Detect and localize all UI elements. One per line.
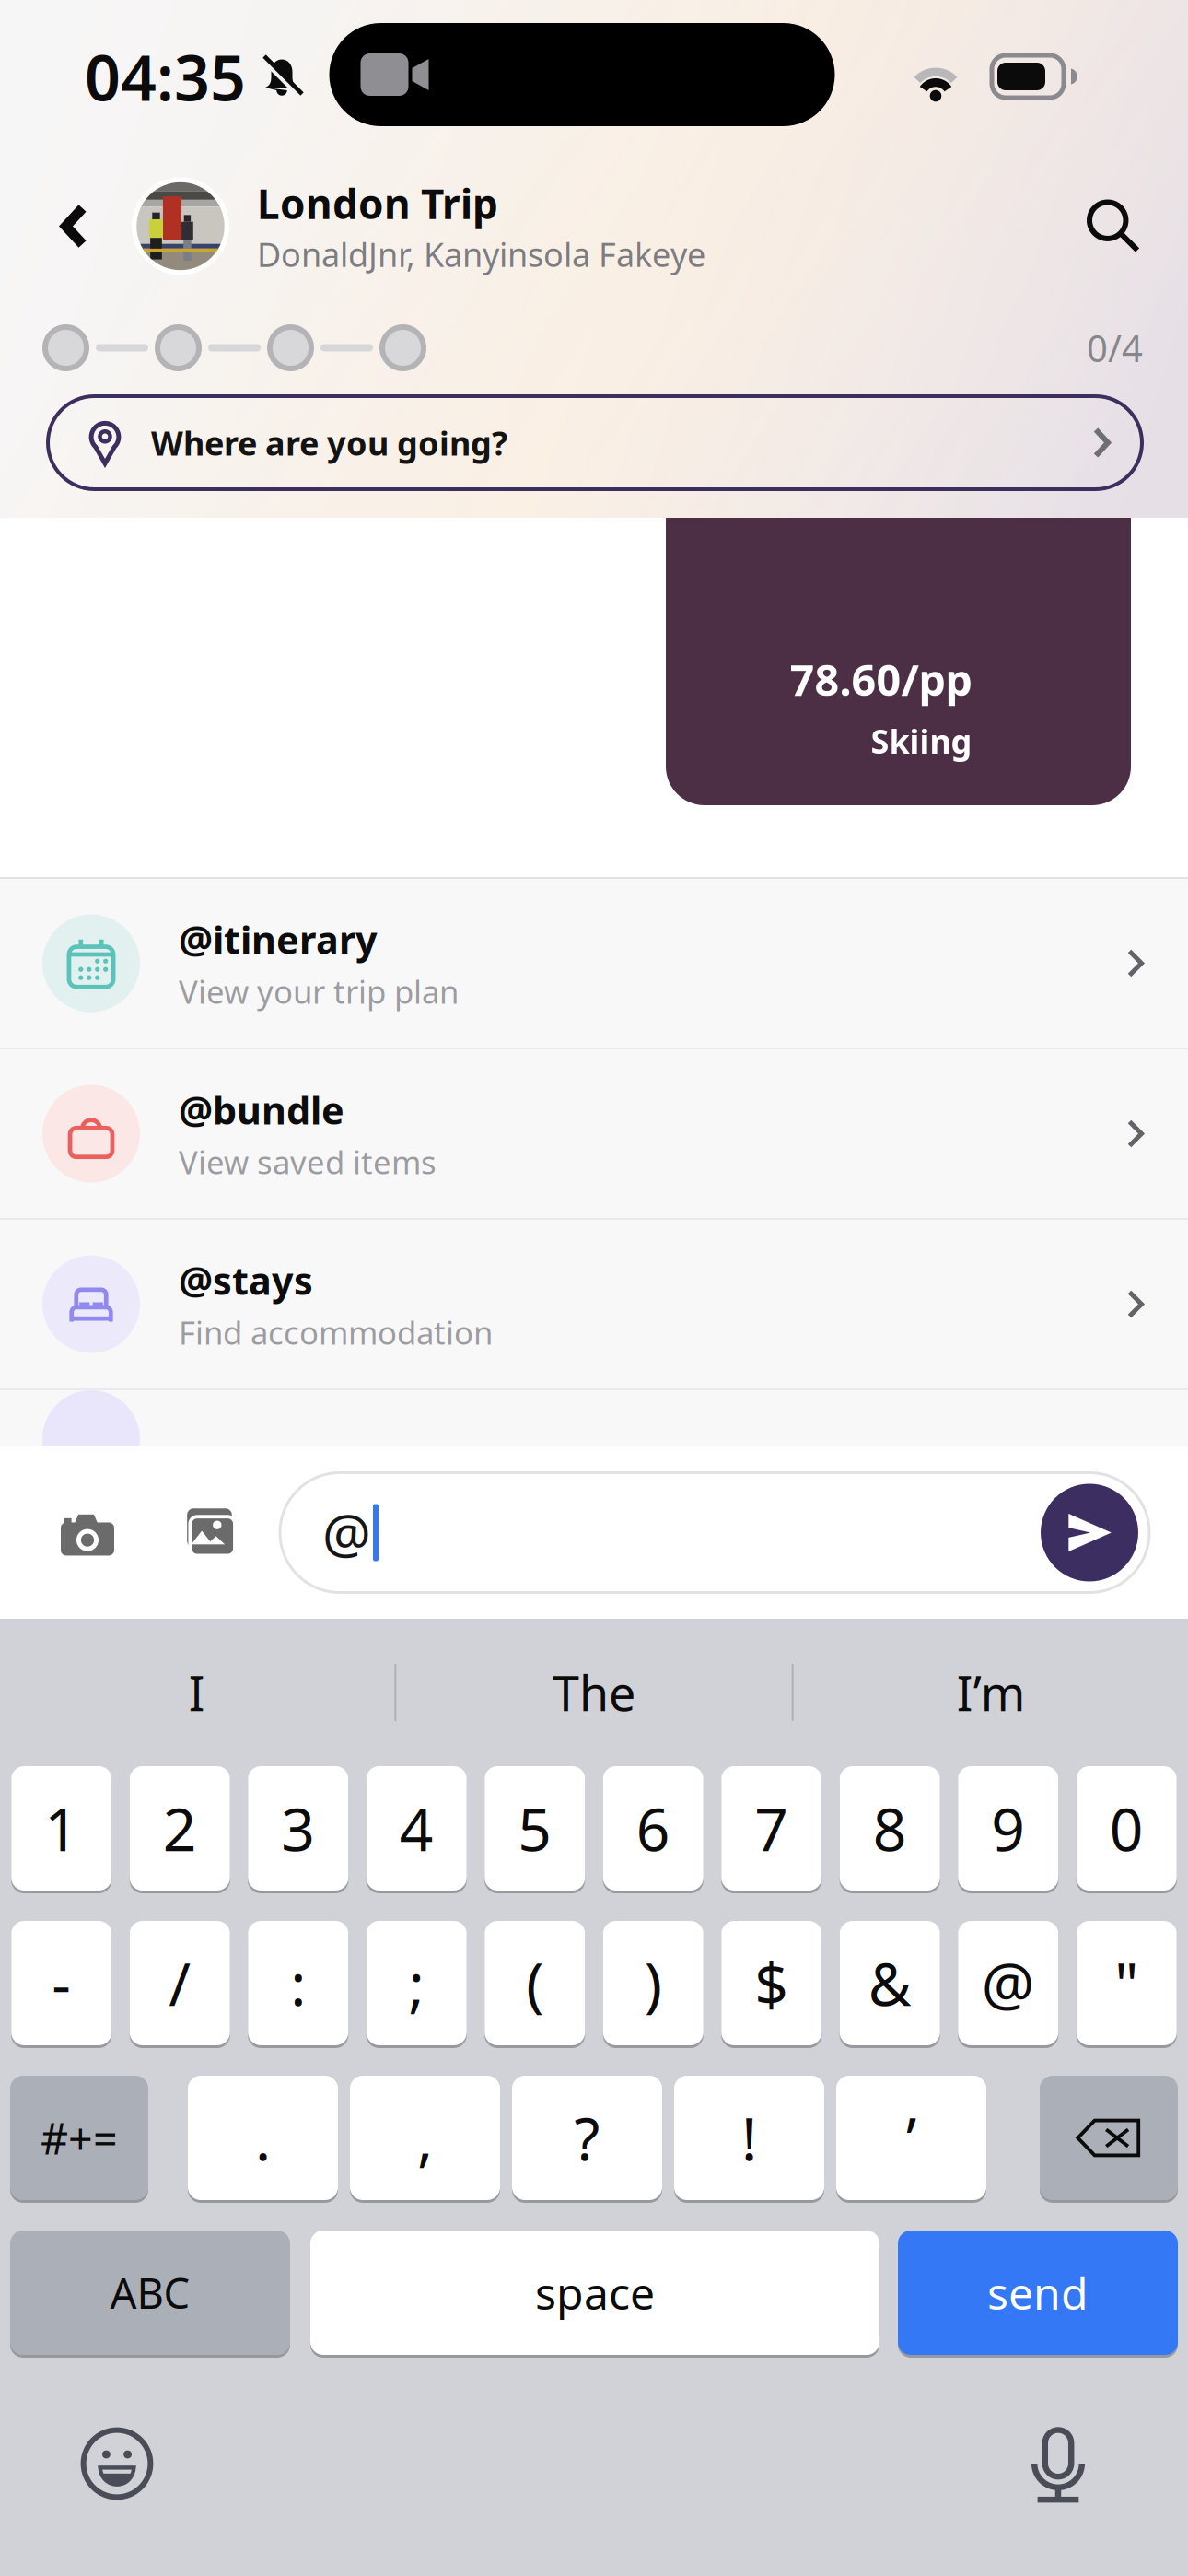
button[interactable]: ’ xyxy=(836,2076,986,2200)
staticText: @itinerary xyxy=(179,914,378,965)
staticText: #+= xyxy=(41,2109,118,2166)
staticText: space xyxy=(535,2263,655,2322)
button[interactable]: ! xyxy=(674,2076,824,2200)
button[interactable]: @bundle xyxy=(0,1049,1188,1218)
staticText: 0/4 xyxy=(1087,323,1143,372)
staticText: The xyxy=(553,1661,635,1724)
staticText: View saved items xyxy=(179,1140,437,1183)
button[interactable]: ABC xyxy=(10,2231,290,2355)
staticText: View your trip plan xyxy=(179,970,459,1012)
button[interactable]: 9 xyxy=(958,1766,1058,1891)
button[interactable]: Dictation xyxy=(1001,2406,1115,2521)
staticText: / xyxy=(169,1944,191,2022)
button[interactable]: : xyxy=(248,1921,348,2045)
button[interactable]: Photo library xyxy=(160,1482,250,1583)
button[interactable]: 6 xyxy=(603,1766,703,1891)
staticText: Find accommodation xyxy=(179,1311,493,1353)
staticText: ( xyxy=(526,1944,544,2022)
staticText: 4 xyxy=(399,1789,434,1868)
button[interactable]: ( xyxy=(485,1921,585,2045)
button[interactable]: @stays xyxy=(0,1220,1188,1388)
staticText: , xyxy=(417,2099,433,2177)
button[interactable]: 7 xyxy=(721,1766,822,1891)
staticText: send xyxy=(987,2263,1089,2322)
staticText: I’m xyxy=(957,1661,1026,1724)
staticText: Skiing xyxy=(871,719,972,763)
staticText: 04:35 xyxy=(85,35,246,118)
button[interactable]: Delete xyxy=(1040,2076,1178,2200)
staticText: 0 xyxy=(1110,1789,1144,1868)
button[interactable]: send xyxy=(898,2231,1178,2355)
button[interactable]: " xyxy=(1076,1921,1177,2045)
button[interactable]: Camera xyxy=(42,1482,133,1583)
staticText: Where are you going? xyxy=(151,421,507,465)
button[interactable]: ; xyxy=(366,1921,467,2045)
staticText: " xyxy=(1115,1944,1138,2022)
staticText: ABC xyxy=(110,2265,190,2320)
staticText: @stays xyxy=(179,1255,313,1305)
button[interactable]: Search xyxy=(1063,171,1164,281)
staticText: 9 xyxy=(991,1789,1025,1868)
staticText: ? xyxy=(574,2099,600,2177)
staticText: 6 xyxy=(636,1789,670,1868)
staticText: ) xyxy=(644,1944,662,2022)
button[interactable]: @itinerary xyxy=(0,879,1188,1048)
staticText: @ xyxy=(322,1497,371,1568)
staticText: : xyxy=(290,1944,306,2022)
staticText: 78.60/pp xyxy=(790,651,972,708)
button[interactable]: , xyxy=(350,2076,500,2200)
staticText: @bundle xyxy=(179,1084,344,1135)
staticText: $ xyxy=(754,1944,789,2022)
staticText: 2 xyxy=(163,1789,197,1868)
button[interactable]: 8 xyxy=(840,1766,940,1891)
button[interactable]: Back xyxy=(17,166,132,286)
staticText: 3 xyxy=(281,1789,315,1868)
button[interactable]: / xyxy=(130,1921,230,2045)
staticText: DonaldJnr, Kanyinsola Fakeye xyxy=(257,232,705,276)
staticText: 5 xyxy=(518,1789,552,1868)
staticText: . xyxy=(255,2099,271,2177)
button[interactable]: 1 xyxy=(11,1766,112,1891)
button[interactable]: - xyxy=(11,1921,112,2045)
button[interactable]: #+= xyxy=(10,2076,148,2200)
staticText: - xyxy=(52,1944,71,2022)
staticText: @ xyxy=(982,1944,1035,2022)
button[interactable]: & xyxy=(840,1921,940,2045)
button[interactable]: . xyxy=(188,2076,338,2200)
button[interactable]: @ xyxy=(958,1921,1058,2045)
staticText: 1 xyxy=(44,1789,78,1868)
staticText: 8 xyxy=(873,1789,907,1868)
button[interactable]: $ xyxy=(721,1921,822,2045)
staticText: ! xyxy=(741,2099,757,2177)
button[interactable]: Send xyxy=(1041,1484,1138,1581)
staticText: London Trip xyxy=(257,176,498,230)
staticText: ; xyxy=(409,1944,424,2022)
button[interactable]: Where are you going? xyxy=(48,396,1142,489)
button[interactable]: Emoji xyxy=(60,2406,174,2521)
button[interactable]: ) xyxy=(603,1921,703,2045)
button[interactable]: 4 xyxy=(366,1766,467,1891)
staticText: ’ xyxy=(906,2099,916,2177)
staticText: 7 xyxy=(754,1789,789,1868)
staticText: & xyxy=(868,1944,912,2022)
button[interactable]: 2 xyxy=(130,1766,230,1891)
button[interactable]: 0 xyxy=(1076,1766,1177,1891)
button[interactable]: space xyxy=(310,2231,879,2355)
staticText: I xyxy=(189,1661,205,1724)
button[interactable]: 5 xyxy=(485,1766,585,1891)
button[interactable]: ? xyxy=(512,2076,662,2200)
button[interactable]: 3 xyxy=(248,1766,348,1891)
